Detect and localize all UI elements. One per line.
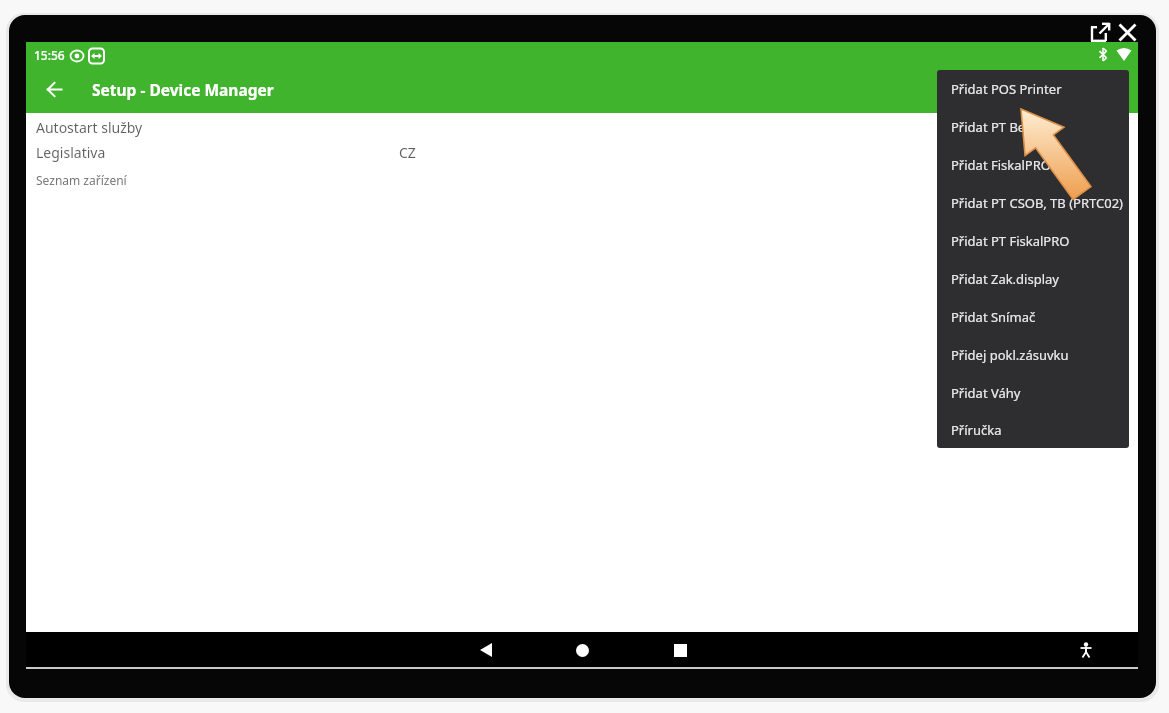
staticText: Přidat Zak.display — [951, 270, 1059, 288]
staticText: CZ — [399, 143, 416, 162]
button[interactable] — [665, 635, 695, 665]
button[interactable] — [471, 635, 501, 665]
button[interactable] — [37, 72, 71, 106]
staticText: Přidat PT FiskalPRO — [951, 232, 1070, 250]
button[interactable] — [1113, 18, 1141, 46]
staticText: Setup - Device Manager — [92, 79, 274, 100]
staticText: Přidat FiskalPRO — [951, 156, 1051, 174]
button[interactable] — [567, 635, 597, 665]
staticText: Přidej pokl.zásuvku — [951, 346, 1069, 364]
staticText: Autostart služby — [36, 118, 143, 137]
staticText: 15:56 — [34, 47, 65, 63]
button[interactable]: Přidat Snímač — [937, 298, 1129, 336]
button[interactable]: Přidat PT CSOB, TB (PRTC02) — [937, 184, 1129, 222]
button[interactable] — [1071, 635, 1101, 665]
staticText: Přidat Snímač — [951, 308, 1036, 326]
button[interactable]: Autostart služby — [26, 114, 1138, 140]
staticText: Příručka — [951, 421, 1002, 439]
button[interactable]: Přidat POS Printer — [937, 70, 1129, 108]
button[interactable]: Přidat PT Bes — [937, 108, 1129, 146]
button[interactable]: Přidat FiskalPRO — [937, 146, 1129, 184]
staticText: Přidat POS Printer — [951, 80, 1062, 98]
staticText: Přidat Váhy — [951, 384, 1021, 402]
button[interactable]: Přidat Váhy — [937, 374, 1129, 412]
staticText: Legislativa — [36, 143, 106, 162]
button[interactable]: Přidat PT FiskalPRO — [937, 222, 1129, 260]
staticText: Přidat PT Bes — [951, 118, 1032, 136]
button[interactable]: Příručka — [937, 412, 1129, 448]
button[interactable]: Přidej pokl.zásuvku — [937, 336, 1129, 374]
button[interactable]: Legislativa — [26, 139, 1138, 165]
staticText: Přidat PT CSOB, TB (PRTC02) — [951, 194, 1123, 212]
staticText: Seznam zařízení — [36, 172, 127, 188]
button[interactable]: Přidat Zak.display — [937, 260, 1129, 298]
button[interactable] — [1086, 18, 1114, 46]
